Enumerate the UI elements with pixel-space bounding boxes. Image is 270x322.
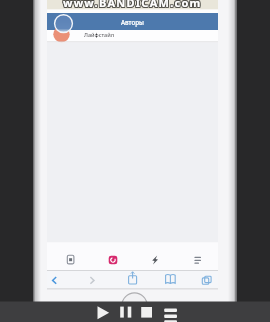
button[interactable] bbox=[64, 252, 78, 266]
staticText: Авторы bbox=[121, 18, 144, 26]
button[interactable] bbox=[95, 304, 111, 321]
staticText: www.BANDICAM.com bbox=[64, 0, 203, 9]
staticText: www.BANDICAM.com bbox=[63, 0, 202, 11]
button[interactable] bbox=[162, 304, 179, 321]
staticText: www.BANDICAM.com bbox=[62, 0, 201, 9]
button[interactable] bbox=[124, 271, 141, 288]
staticText: www.BANDICAM.com bbox=[63, 0, 202, 9]
staticText: www.BANDICAM.com bbox=[64, 0, 203, 11]
button[interactable] bbox=[46, 272, 62, 288]
button[interactable] bbox=[148, 252, 162, 266]
button[interactable] bbox=[190, 252, 204, 266]
staticText: www.BANDICAM.com bbox=[62, 0, 201, 11]
staticText: www.BANDICAM.com bbox=[64, 0, 203, 10]
button[interactable]: Авторы bbox=[47, 13, 218, 30]
button[interactable] bbox=[118, 304, 134, 321]
button[interactable] bbox=[106, 252, 120, 266]
button[interactable] bbox=[84, 272, 100, 288]
button[interactable] bbox=[139, 304, 154, 321]
button[interactable] bbox=[198, 271, 215, 288]
staticText: Лайфстайл bbox=[84, 31, 114, 38]
staticText: www.BANDICAM.com bbox=[63, 0, 202, 10]
button[interactable]: Лайфстайл bbox=[84, 30, 124, 38]
button[interactable] bbox=[162, 271, 179, 288]
staticText: www.BANDICAM.com bbox=[62, 0, 201, 10]
